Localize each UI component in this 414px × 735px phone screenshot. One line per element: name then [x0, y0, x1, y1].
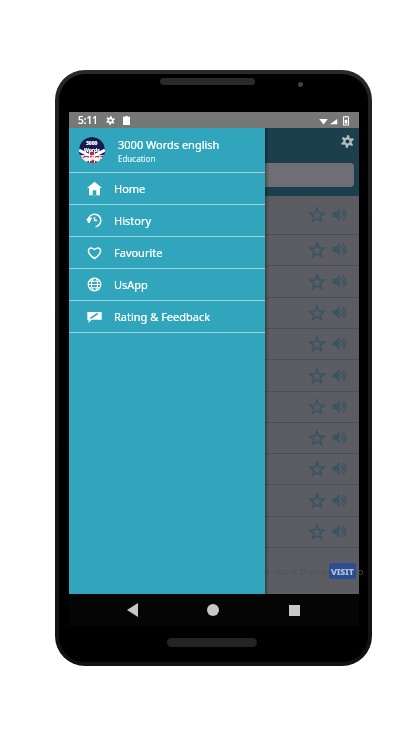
- button[interactable]: [69, 360, 359, 392]
- staticText: 5:11: [78, 113, 98, 127]
- button[interactable]: [69, 423, 359, 454]
- button[interactable]: Recents: [281, 597, 307, 623]
- button[interactable]: Rating & Feedback: [69, 301, 265, 332]
- button[interactable]: [69, 392, 359, 423]
- staticText: Speak to your doctor about therapeutics …: [182, 565, 364, 577]
- staticText: Home: [114, 181, 146, 196]
- button[interactable]: History: [69, 205, 265, 236]
- button[interactable]: UsApp: [69, 269, 265, 300]
- staticText: History: [114, 213, 152, 228]
- staticText: Education: [118, 153, 156, 164]
- button[interactable]: VISIT: [329, 563, 356, 579]
- button[interactable]: [69, 298, 359, 329]
- button[interactable]: Home: [69, 173, 265, 204]
- staticText: Favourite: [114, 245, 163, 260]
- button[interactable]: [69, 196, 359, 235]
- staticText: English: [81, 154, 103, 162]
- button[interactable]: [69, 454, 359, 485]
- staticText: Words: [84, 147, 100, 154]
- button[interactable]: Back: [119, 597, 145, 623]
- button[interactable]: [69, 266, 359, 298]
- button[interactable]: Settings: [341, 135, 354, 148]
- staticText: UsApp: [114, 277, 148, 292]
- staticText: Rating & Feedback: [114, 309, 211, 324]
- button[interactable]: [69, 517, 359, 548]
- staticText: 3000: [86, 140, 98, 147]
- button[interactable]: [69, 329, 359, 360]
- button[interactable]: [77, 163, 354, 187]
- button[interactable]: [69, 485, 359, 517]
- staticText: VISIT: [331, 565, 355, 577]
- staticText: 3000 Words english: [118, 137, 220, 152]
- button[interactable]: [69, 235, 359, 266]
- button[interactable]: Home: [200, 597, 226, 623]
- button[interactable]: Favourite: [69, 237, 265, 268]
